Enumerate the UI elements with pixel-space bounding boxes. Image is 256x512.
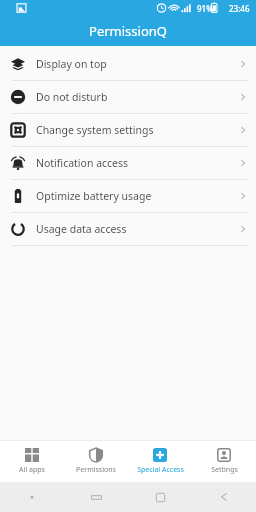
staticText: Optimize battery usage	[36, 189, 230, 203]
button[interactable]: Home	[128, 482, 192, 512]
button[interactable]: Settings	[192, 441, 256, 482]
staticText: Usage data access	[36, 222, 230, 236]
button[interactable]: Back	[192, 482, 256, 512]
button[interactable]: Permissions	[64, 441, 128, 482]
button[interactable]: Assistant	[0, 482, 64, 512]
button[interactable]: Change system settings	[0, 114, 256, 146]
staticText: 91%	[197, 3, 213, 14]
staticText: Notification access	[36, 156, 230, 170]
button[interactable]: Notification access	[0, 147, 256, 179]
button[interactable]: Optimize battery usage	[0, 180, 256, 212]
staticText: Display on top	[36, 57, 230, 71]
staticText: 23:46	[229, 3, 250, 14]
button[interactable]: Recent apps	[64, 482, 128, 512]
button[interactable]: Display on top	[0, 48, 256, 80]
staticText: Settings	[211, 465, 238, 475]
staticText: Permissions	[76, 465, 116, 475]
button[interactable]: Usage data access	[0, 213, 256, 245]
staticText: All apps	[19, 465, 45, 475]
staticText: PermissionQ	[89, 22, 167, 40]
button[interactable]: Do not disturb	[0, 81, 256, 113]
staticText: Change system settings	[36, 123, 230, 137]
button[interactable]: Special Access	[128, 441, 192, 482]
staticText: Special Access	[137, 465, 184, 475]
button[interactable]: All apps	[0, 441, 64, 482]
staticText: Do not disturb	[36, 90, 230, 104]
